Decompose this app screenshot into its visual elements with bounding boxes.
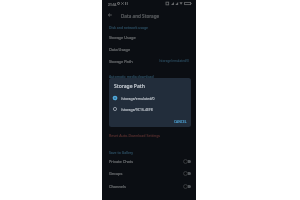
- staticText: /storage/emulated/0: [159, 59, 189, 63]
- staticText: Disk and network usage: [109, 25, 149, 30]
- staticText: Automatic media download: [109, 74, 154, 79]
- button[interactable]: Private Chats: [102, 155, 196, 167]
- button[interactable]: CANCEL: [171, 116, 189, 125]
- button[interactable]: /storage/emulated/0: [109, 93, 191, 104]
- staticText: Data and Storage: [121, 13, 160, 19]
- button[interactable]: Groups: [102, 167, 196, 179]
- button[interactable]: Channels: [102, 180, 196, 192]
- button[interactable]: [102, 43, 196, 54]
- button[interactable]: [102, 32, 196, 43]
- staticText: Storage Path: [114, 83, 145, 90]
- button[interactable]: Back: [104, 9, 115, 20]
- staticText: Reset Auto-Download Settings: [109, 133, 161, 138]
- button[interactable]: [102, 54, 196, 65]
- staticText: Groups: [109, 171, 123, 176]
- button[interactable]: [102, 130, 196, 141]
- staticText: /storage/9C16-4EF8: [121, 107, 153, 112]
- button[interactable]: /storage/9C16-4EF8: [109, 104, 191, 115]
- staticText: CANCEL: [174, 119, 187, 123]
- staticText: Storage Path: [109, 59, 133, 64]
- staticText: Private Chats: [109, 159, 134, 164]
- staticText: 21:54: [108, 2, 117, 6]
- staticText: /storage/emulated/0: [121, 96, 155, 101]
- staticText: Channels: [109, 184, 126, 189]
- staticText: Save to Gallery: [109, 150, 134, 155]
- staticText: Storage Usage: [109, 35, 136, 40]
- staticText: Data Usage: [109, 47, 131, 52]
